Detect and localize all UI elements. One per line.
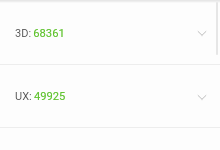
button[interactable]: UX: 49925 <box>0 65 220 128</box>
button[interactable]: Expand 3D <box>193 24 211 42</box>
button[interactable]: 3D: 68361 <box>0 1 220 65</box>
button[interactable]: Expand UX <box>193 88 211 106</box>
staticText: 3D: 68361 <box>15 27 65 40</box>
staticText: UX: 49925 <box>15 90 66 103</box>
